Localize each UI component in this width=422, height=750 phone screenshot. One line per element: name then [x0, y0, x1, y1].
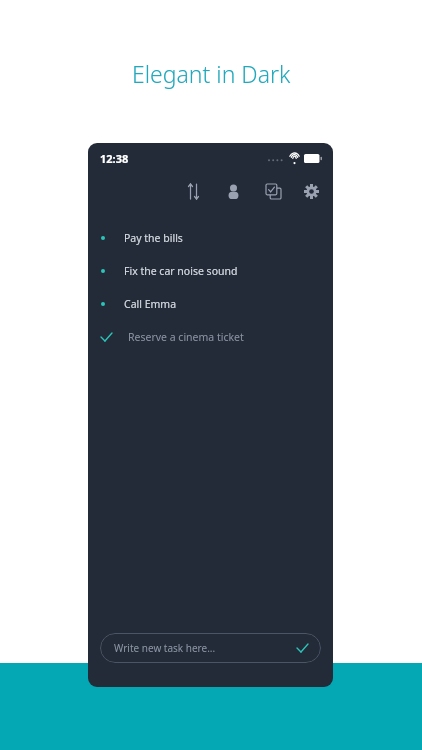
button[interactable]: Settings: [299, 179, 323, 203]
staticText: Pay the bills: [124, 231, 183, 245]
button[interactable]: Reserve a cinema ticket: [88, 320, 333, 353]
staticText: 12:38: [100, 151, 129, 166]
button[interactable]: Fix the car noise sound: [88, 254, 333, 287]
button[interactable]: Profile: [221, 179, 245, 203]
button[interactable]: Write new task here...: [100, 633, 321, 663]
button[interactable]: Call Emma: [88, 287, 333, 320]
staticText: Elegant in Dark: [132, 58, 291, 89]
staticText: Call Emma: [124, 297, 177, 311]
button[interactable]: Task lists: [261, 179, 285, 203]
staticText: Write new task here...: [114, 641, 216, 655]
staticText: Fix the car noise sound: [124, 264, 238, 278]
staticText: Reserve a cinema ticket: [128, 330, 244, 344]
button[interactable]: Sort tasks: [181, 179, 205, 203]
button[interactable]: Pay the bills: [88, 221, 333, 254]
